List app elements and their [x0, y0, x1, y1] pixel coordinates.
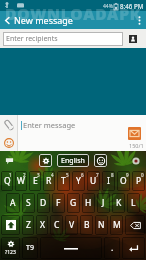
button[interactable]: Q	[1, 171, 13, 191]
button[interactable]: Send message	[128, 127, 141, 140]
staticText: A	[10, 197, 16, 209]
button[interactable]: U	[87, 171, 100, 191]
button[interactable]: W	[15, 171, 27, 191]
staticText: 5	[66, 172, 69, 178]
button[interactable]: Keyboard settings	[39, 154, 52, 167]
staticText: S	[26, 197, 31, 209]
button[interactable]: Attach	[0, 115, 17, 135]
staticText: 3	[37, 172, 40, 178]
button[interactable]: English	[57, 154, 89, 167]
button[interactable]: L	[127, 193, 140, 213]
staticText: Enter message	[23, 120, 76, 130]
staticText: U	[90, 175, 97, 187]
button[interactable]: E	[29, 171, 41, 191]
staticText: ?123	[5, 249, 16, 256]
button[interactable]: Choose contacts	[129, 35, 137, 43]
staticText: Y	[76, 175, 81, 187]
button[interactable]: C	[50, 215, 63, 235]
button[interactable]: T9 mode	[22, 237, 38, 259]
button[interactable]: Z	[22, 215, 34, 235]
staticText: 44%	[103, 3, 113, 10]
staticText: English	[61, 156, 85, 166]
staticText: G	[70, 197, 77, 209]
button[interactable]: F	[52, 193, 65, 213]
button[interactable]: K	[112, 193, 125, 213]
staticText: T9	[26, 243, 34, 253]
staticText: 1	[9, 172, 12, 178]
staticText: V	[69, 219, 75, 231]
button[interactable]: G	[67, 193, 80, 213]
staticText: Z	[26, 219, 31, 231]
staticText: 4	[51, 172, 54, 178]
staticText: 8	[111, 172, 114, 178]
staticText: New message	[14, 14, 73, 26]
button[interactable]: R	[43, 171, 55, 191]
staticText: 7	[96, 172, 99, 178]
button[interactable]: A	[6, 193, 20, 213]
button[interactable]: Y	[72, 171, 85, 191]
staticText: X	[40, 219, 45, 231]
staticText: .	[111, 242, 114, 254]
button[interactable]: M	[110, 215, 123, 235]
button[interactable]: Keyboard settings	[1, 237, 20, 259]
staticText: K	[116, 197, 122, 209]
button[interactable]: I	[102, 171, 115, 191]
button[interactable]: More options	[133, 11, 146, 29]
staticText: F	[56, 197, 61, 209]
staticText: D	[40, 197, 47, 209]
button[interactable]: Enter	[122, 237, 145, 259]
staticText: J	[102, 197, 105, 209]
staticText: E	[33, 175, 38, 187]
staticText: 0	[141, 172, 144, 178]
staticText: 6	[81, 172, 84, 178]
button[interactable]: Period	[104, 237, 120, 259]
button[interactable]: S	[22, 193, 35, 213]
button[interactable]: X	[36, 215, 48, 235]
staticText: N	[98, 219, 105, 231]
button[interactable]: D	[37, 193, 50, 213]
staticText: Enter recipients	[6, 34, 58, 44]
staticText: H	[85, 197, 92, 209]
staticText: 150/1	[129, 142, 144, 149]
button[interactable]: O	[117, 171, 130, 191]
staticText: M	[113, 219, 121, 231]
staticText: 2	[23, 172, 26, 178]
button[interactable]: Emoji	[94, 154, 107, 167]
button[interactable]: Navigate up	[0, 11, 14, 29]
staticText: Q	[4, 175, 11, 187]
staticText: T	[61, 175, 66, 187]
button[interactable]: H	[82, 193, 95, 213]
button[interactable]: N	[95, 215, 108, 235]
button[interactable]: Enter recipients	[3, 32, 123, 46]
staticText: L	[131, 197, 136, 209]
button[interactable]: Delete	[125, 215, 145, 235]
button[interactable]: Shift	[1, 215, 20, 235]
staticText: DOWNLOADAPK	[5, 3, 142, 24]
staticText: 9	[126, 172, 129, 178]
staticText: W	[17, 175, 25, 187]
staticText: B	[84, 219, 90, 231]
staticText: R	[46, 175, 52, 187]
button[interactable]: Space	[40, 237, 102, 259]
button[interactable]: P	[132, 171, 145, 191]
staticText: P	[136, 175, 142, 187]
button[interactable]: Insert emoticon	[0, 135, 17, 151]
staticText: 8:46 PM	[120, 2, 144, 10]
button[interactable]: J	[97, 193, 110, 213]
button[interactable]: B	[80, 215, 93, 235]
button[interactable]: T	[57, 171, 70, 191]
staticText: C	[54, 219, 60, 231]
staticText: I	[107, 175, 110, 187]
staticText: O	[120, 175, 127, 187]
button[interactable]: V	[65, 215, 78, 235]
